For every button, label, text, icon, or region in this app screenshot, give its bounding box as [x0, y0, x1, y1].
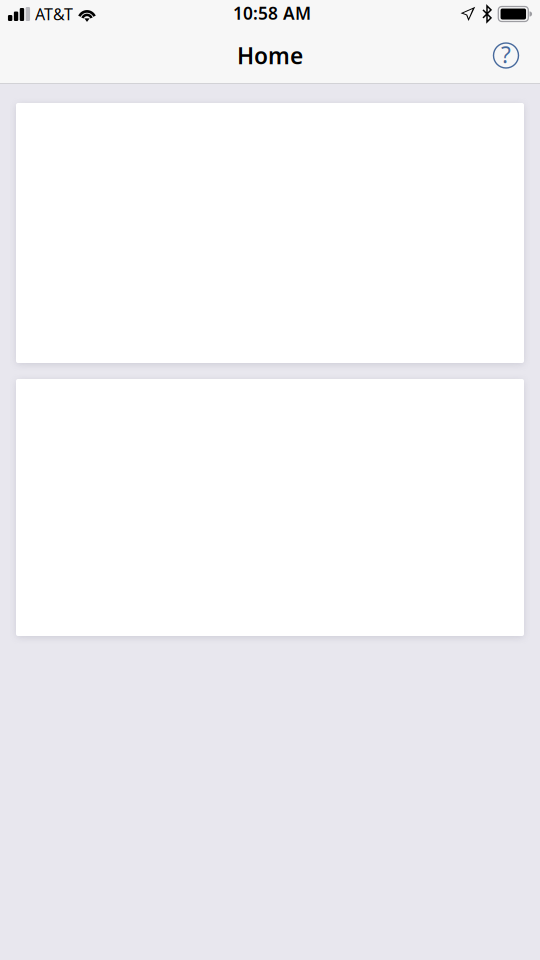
- staticText: ?: [501, 39, 511, 69]
- staticText: 10:58 AM: [233, 1, 311, 24]
- staticText: AT&T: [35, 3, 73, 25]
- staticText: Home: [237, 40, 303, 70]
- button[interactable]: Help: [484, 33, 528, 77]
